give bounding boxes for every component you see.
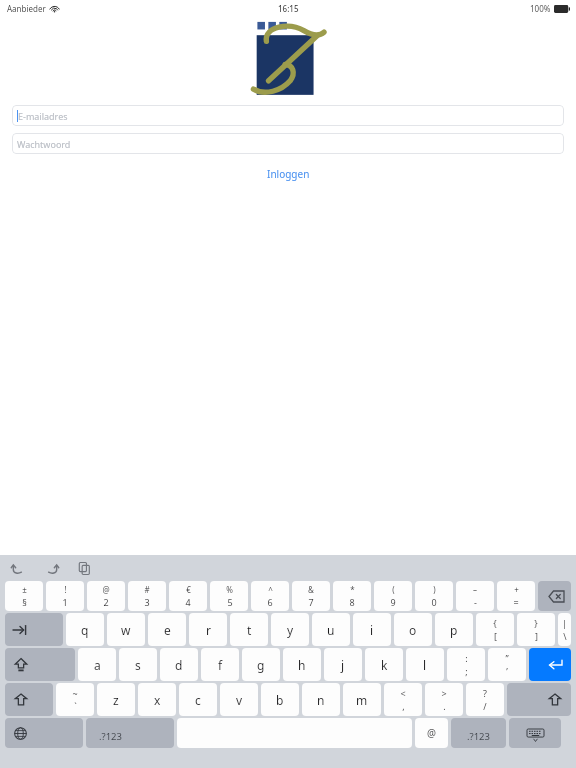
button[interactable]: Hide keyboard xyxy=(509,718,561,748)
staticText: ^ xyxy=(268,584,273,595)
button[interactable]: ? xyxy=(466,683,504,716)
staticText: a xyxy=(94,657,101,673)
button[interactable]: * xyxy=(333,581,371,611)
button[interactable]: .?123 xyxy=(86,718,174,748)
staticText: s xyxy=(135,657,141,673)
button[interactable]: e xyxy=(148,613,186,646)
button[interactable]: g xyxy=(242,648,280,681)
button[interactable]: r xyxy=(189,613,227,646)
button[interactable]: l xyxy=(406,648,444,681)
button[interactable]: ~ xyxy=(56,683,94,716)
staticText: f xyxy=(218,657,223,673)
button[interactable]: – xyxy=(456,581,494,611)
staticText: w xyxy=(121,622,131,638)
staticText: c xyxy=(195,692,201,708)
staticText: ± xyxy=(22,584,27,595)
button[interactable]: ” xyxy=(488,648,526,681)
button[interactable]: w xyxy=(107,613,145,646)
staticText: n xyxy=(317,692,325,708)
button[interactable]: m xyxy=(343,683,381,716)
button[interactable]: z xyxy=(97,683,135,716)
button[interactable]: Inloggen xyxy=(255,164,322,184)
button[interactable]: ) xyxy=(415,581,453,611)
button[interactable]: j xyxy=(324,648,362,681)
button[interactable]: x xyxy=(138,683,176,716)
staticText: 1 xyxy=(62,596,68,608)
staticText: 9 xyxy=(390,596,396,608)
staticText: @ xyxy=(102,584,110,595)
button[interactable]: ! xyxy=(46,581,84,611)
button[interactable]: s xyxy=(119,648,157,681)
button[interactable]: € xyxy=(169,581,207,611)
button[interactable]: Tab xyxy=(5,613,63,646)
button[interactable]: t xyxy=(230,613,268,646)
button[interactable]: # xyxy=(128,581,166,611)
button[interactable]: Backspace xyxy=(538,581,571,611)
button[interactable]: Shift xyxy=(5,683,53,716)
button[interactable]: Paste xyxy=(74,558,94,578)
staticText: ” xyxy=(505,652,509,664)
button[interactable]: i xyxy=(353,613,391,646)
staticText: .?123 xyxy=(467,730,490,743)
staticText: % xyxy=(226,584,233,595)
staticText: & xyxy=(308,584,314,595)
button[interactable]: Redo xyxy=(42,558,62,578)
button[interactable]: u xyxy=(312,613,350,646)
staticText: 4 xyxy=(185,596,191,608)
button[interactable]: Caps lock xyxy=(5,648,75,681)
button[interactable]: ^ xyxy=(251,581,289,611)
button[interactable]: : xyxy=(447,648,485,681)
button[interactable]: ± xyxy=(5,581,43,611)
button[interactable]: { xyxy=(476,613,514,646)
button[interactable]: d xyxy=(160,648,198,681)
staticText: k xyxy=(381,657,388,673)
button[interactable]: + xyxy=(497,581,535,611)
staticText: | xyxy=(562,617,567,629)
button[interactable]: f xyxy=(201,648,239,681)
button[interactable]: k xyxy=(365,648,403,681)
staticText: ! xyxy=(64,584,67,595)
staticText: ` xyxy=(74,700,77,712)
button[interactable]: y xyxy=(271,613,309,646)
button[interactable]: p xyxy=(435,613,473,646)
button[interactable]: v xyxy=(220,683,258,716)
button[interactable]: } xyxy=(517,613,555,646)
staticText: : xyxy=(465,652,468,664)
staticText: ] xyxy=(535,630,538,642)
button[interactable]: o xyxy=(394,613,432,646)
button[interactable]: Return xyxy=(529,648,571,681)
staticText: l xyxy=(423,657,427,673)
button[interactable]: > xyxy=(425,683,463,716)
button[interactable]: | xyxy=(558,613,571,646)
button[interactable]: n xyxy=(302,683,340,716)
button[interactable]: a xyxy=(78,648,116,681)
button[interactable]: E-mailadres xyxy=(12,105,564,126)
staticText: ( xyxy=(392,584,395,595)
staticText: y xyxy=(287,622,294,638)
button[interactable]: & xyxy=(292,581,330,611)
button[interactable]: @ xyxy=(87,581,125,611)
button[interactable]: Shift xyxy=(507,683,571,716)
button[interactable]: h xyxy=(283,648,321,681)
button[interactable]: < xyxy=(384,683,422,716)
button[interactable]: % xyxy=(210,581,248,611)
staticText: o xyxy=(409,622,417,638)
button[interactable]: ( xyxy=(374,581,412,611)
button[interactable]: q xyxy=(66,613,104,646)
staticText: ? xyxy=(483,687,487,699)
button[interactable]: c xyxy=(179,683,217,716)
staticText: 8 xyxy=(349,596,355,608)
button[interactable]: Undo xyxy=(7,558,27,578)
staticText: # xyxy=(144,584,150,595)
button[interactable]: Change keyboard xyxy=(5,718,83,748)
staticText: * xyxy=(350,584,355,595)
button[interactable]: b xyxy=(261,683,299,716)
button[interactable]: Wachtwoord xyxy=(12,133,564,154)
staticText: z xyxy=(113,692,119,708)
button[interactable]: .?123 xyxy=(451,718,506,748)
staticText: b xyxy=(276,692,284,708)
staticText: { xyxy=(493,617,497,629)
staticText: i xyxy=(370,622,374,638)
button[interactable]: @ xyxy=(415,718,448,748)
